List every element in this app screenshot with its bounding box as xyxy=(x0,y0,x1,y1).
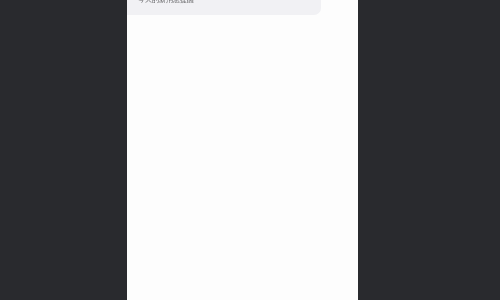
staticText: 今天的新消息提醒 xyxy=(138,0,194,4)
other: 标题 xyxy=(138,0,194,4)
button[interactable]: 标题 xyxy=(127,0,321,15)
